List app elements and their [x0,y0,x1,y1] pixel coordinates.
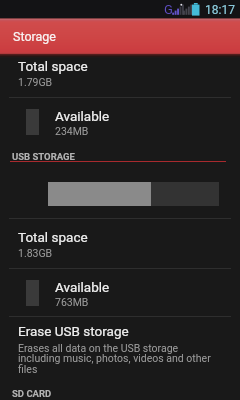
staticText: USB STORAGE [12,151,75,162]
other: Battery [192,3,200,16]
staticText: 1.83GB [18,247,53,259]
button[interactable]: Available 234MB [0,100,240,140]
staticText: Erases all data on the USB storage inclu… [18,342,218,376]
staticText: Available [55,279,110,295]
staticText: 234MB [55,125,89,137]
staticText: Total space [18,58,88,74]
staticText: Total space [18,229,88,245]
staticText: 18:17 [205,3,235,17]
staticText: G [164,2,173,17]
staticText: 763MB [55,296,89,308]
button[interactable]: Total space 1.79GB [0,55,240,95]
staticText: Available [55,108,110,124]
staticText: SD CARD [12,388,52,399]
button[interactable]: Erase USB storage [0,320,240,380]
staticText: 1.79GB [18,76,53,88]
staticText: Erase USB storage [18,323,129,339]
button[interactable]: Available 763MB [0,271,240,315]
staticText: Storage [13,29,56,44]
button[interactable]: Storage [0,18,240,54]
other: Mobile signal strength [171,3,191,16]
button[interactable]: Total space 1.83GB [0,226,240,266]
